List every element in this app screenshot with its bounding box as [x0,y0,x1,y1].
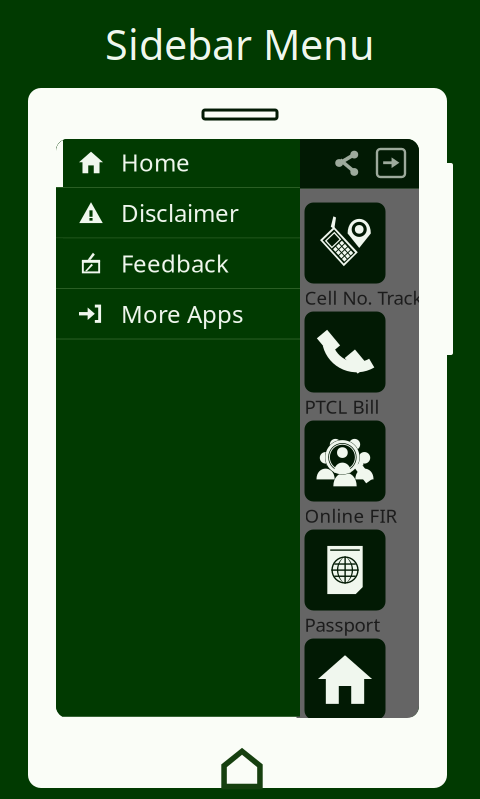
button[interactable]: PTCL Bill [304,311,385,420]
button[interactable]: Cell No. Track [304,202,422,311]
button[interactable]: Online FIR [304,420,397,529]
button[interactable]: Exit [369,137,413,188]
staticText: Home [121,146,190,178]
staticText: More Apps [121,298,243,330]
button[interactable]: Passport [304,529,385,638]
button[interactable]: Disclaimer [56,188,300,237]
staticText: Sidebar Menu [105,17,375,71]
button[interactable]: Share [325,137,369,188]
button[interactable]: Home [56,137,300,187]
staticText: Disclaimer [121,197,239,229]
staticText: Online FIR [304,503,397,528]
button[interactable]: Feedback [56,238,300,288]
staticText: PTCL Bill [304,394,379,419]
staticText: Feedback [121,247,229,279]
button[interactable]: More Apps [56,289,300,338]
staticText: Passport [304,612,380,637]
staticText: Cell No. Track [304,285,422,310]
